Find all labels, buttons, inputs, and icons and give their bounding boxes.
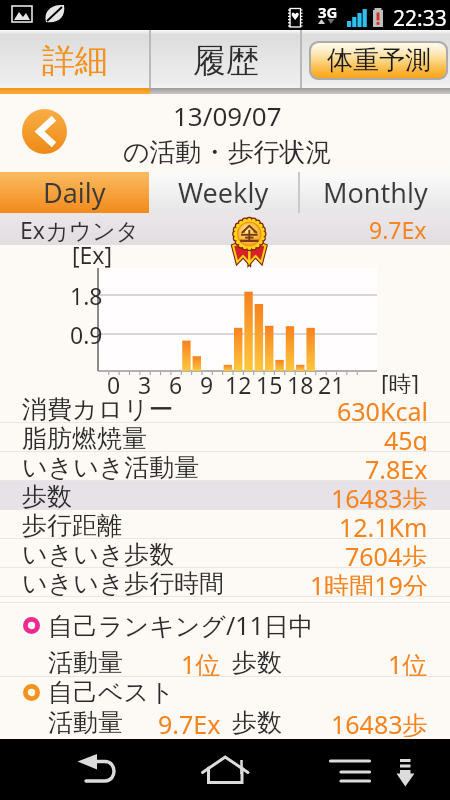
staticText: 1.8: [70, 280, 103, 311]
staticText: 活動量: [48, 647, 123, 676]
staticText: 歩数: [232, 707, 282, 737]
staticText: の活動・歩行状況: [123, 136, 332, 169]
button[interactable]: 自己ベスト: [0, 676, 450, 737]
staticText: いきいき歩行時間: [22, 568, 225, 597]
button[interactable]: 歩数: [0, 481, 450, 510]
staticText: 履歴: [193, 40, 259, 82]
staticText: 自己ランキング/11日中: [48, 608, 314, 642]
staticText: 詳細: [42, 40, 108, 82]
staticText: 9.7Ex: [369, 214, 427, 245]
staticText: 1位: [181, 647, 221, 676]
button[interactable]: いきいき活動量: [0, 452, 450, 481]
staticText: 脂肪燃焼量: [22, 423, 147, 452]
staticText: Daily: [43, 174, 106, 211]
staticText: 18: [287, 369, 314, 400]
staticText: 13/09/07: [173, 98, 282, 133]
staticText: 消費カロリー: [22, 394, 174, 423]
button[interactable]: Weekly: [149, 172, 298, 213]
staticText: Weekly: [178, 174, 269, 211]
button[interactable]: Monthly: [300, 172, 450, 213]
button[interactable]: Back: [22, 109, 67, 154]
staticText: [時]: [381, 367, 420, 398]
staticText: 0: [107, 369, 121, 400]
button[interactable]: 脂肪燃焼量: [0, 423, 450, 452]
button[interactable]: 履歴: [151, 30, 300, 88]
staticText: 9.7Ex: [158, 707, 221, 737]
button[interactable]: 詳細: [0, 30, 149, 88]
staticText: Monthly: [323, 174, 428, 211]
staticText: 7604歩: [345, 539, 428, 568]
staticText: 1位: [388, 647, 428, 676]
button[interactable]: いきいき歩行時間: [0, 568, 450, 597]
staticText: 16483歩: [331, 707, 428, 737]
staticText: Exカウンタ: [20, 214, 140, 245]
staticText: 歩行距離: [22, 510, 122, 539]
staticText: 22:33: [393, 4, 447, 33]
staticText: 自己ベスト: [48, 677, 175, 707]
staticText: 45g: [384, 423, 428, 452]
staticText: 16483歩: [331, 481, 428, 510]
staticText: いきいき歩数: [22, 539, 175, 568]
staticText: 12: [225, 369, 252, 400]
staticText: 3G: [318, 2, 338, 22]
button[interactable]: Download: [384, 745, 428, 793]
button[interactable]: 消費カロリー: [0, 394, 450, 423]
button[interactable]: Home: [190, 745, 262, 793]
staticText: 0.9: [70, 319, 103, 350]
staticText: 体重予測: [327, 44, 431, 77]
staticText: 12.1Km: [339, 510, 428, 539]
button[interactable]: いきいき歩数: [0, 539, 450, 568]
staticText: 15: [256, 369, 283, 400]
staticText: [Ex]: [72, 239, 113, 270]
button[interactable]: Daily: [0, 172, 149, 213]
button[interactable]: 歩行距離: [0, 510, 450, 539]
staticText: 6: [169, 369, 183, 400]
staticText: 歩数: [22, 481, 72, 510]
staticText: 1時間19分: [310, 568, 428, 597]
staticText: 3: [138, 369, 152, 400]
button[interactable]: 体重予測: [311, 43, 446, 78]
staticText: 7.8Ex: [365, 452, 428, 481]
staticText: 21: [318, 369, 345, 400]
button[interactable]: 自己ランキング/11日中: [0, 602, 450, 676]
button[interactable]: Back: [62, 745, 134, 793]
staticText: 630Kcal: [337, 394, 428, 423]
staticText: 9: [200, 369, 214, 400]
staticText: 活動量: [48, 707, 123, 737]
button[interactable]: Exカウンタ: [0, 213, 450, 245]
staticText: 歩数: [232, 647, 282, 676]
staticText: いきいき活動量: [22, 452, 200, 481]
button[interactable]: Menu: [322, 745, 380, 793]
